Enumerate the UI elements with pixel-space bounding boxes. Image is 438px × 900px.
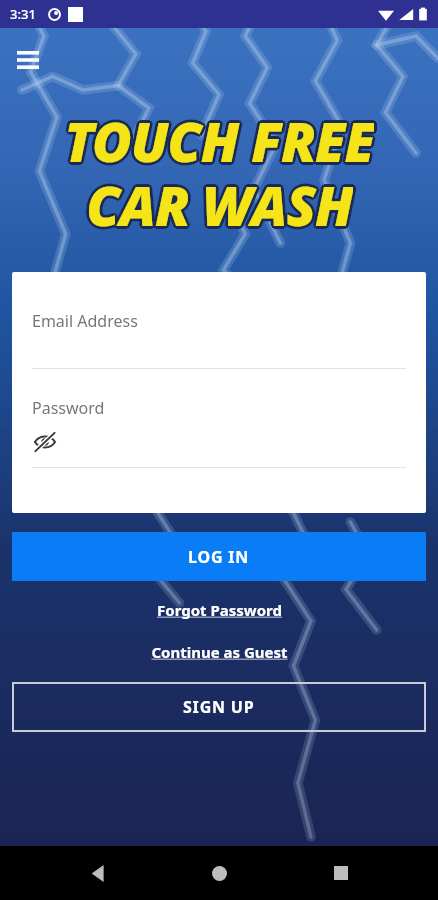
button[interactable]: Home — [195, 849, 243, 897]
staticText: CAR WASH — [89, 168, 356, 230]
button[interactable]: Password — [32, 397, 406, 455]
button[interactable]: Recent apps — [317, 849, 365, 897]
staticText: Email Address — [32, 310, 138, 332]
staticText: CAR WASH — [84, 170, 351, 232]
staticText: Continue as Guest — [151, 642, 288, 662]
staticText: CAR WASH — [83, 168, 350, 230]
staticText: TOUCH FREE — [64, 104, 374, 166]
staticText: CAR WASH — [84, 166, 351, 228]
button[interactable]: Forgot Password — [0, 597, 438, 623]
button[interactable]: Continue as Guest — [0, 639, 438, 665]
button[interactable]: LOG IN — [12, 532, 426, 581]
button[interactable]: Open navigation menu — [8, 40, 48, 80]
staticText: 3:31 — [10, 5, 36, 23]
staticText: TOUCH FREE — [67, 104, 377, 166]
button[interactable]: Back — [74, 849, 122, 897]
staticText: CAR WASH — [86, 171, 353, 233]
staticText: TOUCH FREE — [61, 104, 371, 166]
staticText: CAR WASH — [86, 168, 353, 230]
staticText: CAR WASH — [88, 166, 355, 228]
staticText: CAR WASH — [88, 170, 355, 232]
staticText: LOG IN — [188, 546, 250, 568]
staticText: TOUCH FREE — [62, 106, 372, 168]
staticText: TOUCH FREE — [66, 102, 376, 164]
staticText: CAR WASH — [86, 165, 353, 227]
button[interactable]: SIGN UP — [12, 682, 426, 732]
staticText: Password — [32, 397, 105, 419]
staticText: TOUCH FREE — [66, 106, 376, 168]
staticText: Forgot Password — [157, 600, 282, 620]
button[interactable]: Email Address — [32, 310, 406, 368]
staticText: SIGN UP — [183, 696, 255, 718]
staticText: TOUCH FREE — [64, 101, 374, 163]
button[interactable]: Show password — [32, 429, 58, 455]
staticText: TOUCH FREE — [64, 107, 374, 169]
staticText: TOUCH FREE — [62, 102, 372, 164]
